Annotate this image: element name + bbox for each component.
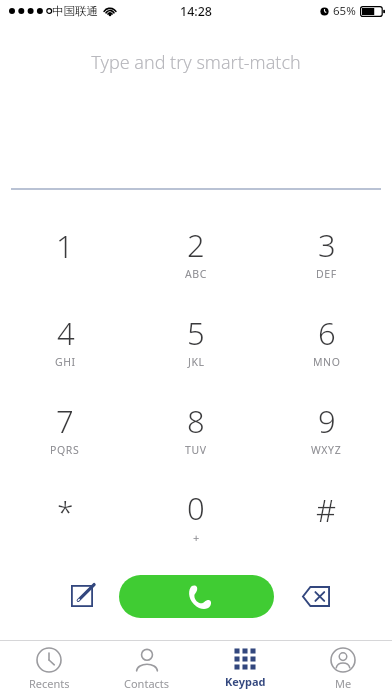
- staticText: 1: [56, 225, 74, 267]
- staticText: DEF: [316, 267, 337, 281]
- staticText: Keypad: [225, 674, 266, 689]
- staticText: 9: [318, 400, 336, 442]
- button[interactable]: 9: [261, 384, 392, 472]
- button[interactable]: Backspace: [294, 574, 338, 618]
- button[interactable]: 4: [0, 296, 130, 384]
- staticText: 中国联通: [52, 4, 98, 18]
- button[interactable]: New contact: [62, 576, 102, 616]
- staticText: *: [57, 491, 74, 529]
- staticText: Type and try smart-match: [91, 50, 301, 75]
- staticText: 6: [318, 312, 336, 354]
- button[interactable]: Call: [119, 575, 274, 618]
- staticText: Me: [335, 676, 352, 691]
- staticText: 2: [187, 224, 205, 266]
- staticText: Contacts: [124, 676, 170, 691]
- button[interactable]: 0: [130, 472, 261, 560]
- staticText: 8: [187, 400, 205, 442]
- staticText: 4: [57, 312, 75, 354]
- button[interactable]: #: [261, 472, 392, 560]
- button[interactable]: 6: [261, 296, 392, 384]
- button[interactable]: *: [0, 472, 130, 560]
- button[interactable]: Contacts: [98, 641, 196, 696]
- staticText: Recents: [29, 676, 70, 691]
- staticText: 7: [56, 400, 74, 442]
- staticText: #: [316, 489, 337, 531]
- staticText: GHI: [55, 355, 76, 369]
- staticText: 5: [187, 312, 205, 354]
- button[interactable]: 1: [0, 208, 130, 296]
- button[interactable]: 8: [130, 384, 261, 472]
- staticText: 0: [187, 487, 205, 529]
- staticText: TUV: [185, 443, 207, 457]
- staticText: 14:28: [180, 3, 213, 20]
- staticText: ABC: [185, 267, 207, 281]
- staticText: WXYZ: [311, 443, 342, 457]
- staticText: JKL: [188, 355, 205, 369]
- button[interactable]: 7: [0, 384, 130, 472]
- button[interactable]: Keypad: [196, 641, 294, 696]
- button[interactable]: Me: [294, 641, 392, 696]
- staticText: MNO: [313, 355, 341, 369]
- button[interactable]: 2: [130, 208, 261, 296]
- staticText: 65%: [333, 3, 356, 19]
- button[interactable]: 5: [130, 296, 261, 384]
- button[interactable]: Recents: [0, 641, 98, 696]
- staticText: PQRS: [50, 443, 80, 457]
- button[interactable]: Type and try smart-match: [0, 44, 392, 184]
- staticText: +: [193, 530, 200, 545]
- staticText: 3: [318, 224, 336, 266]
- button[interactable]: 3: [261, 208, 392, 296]
